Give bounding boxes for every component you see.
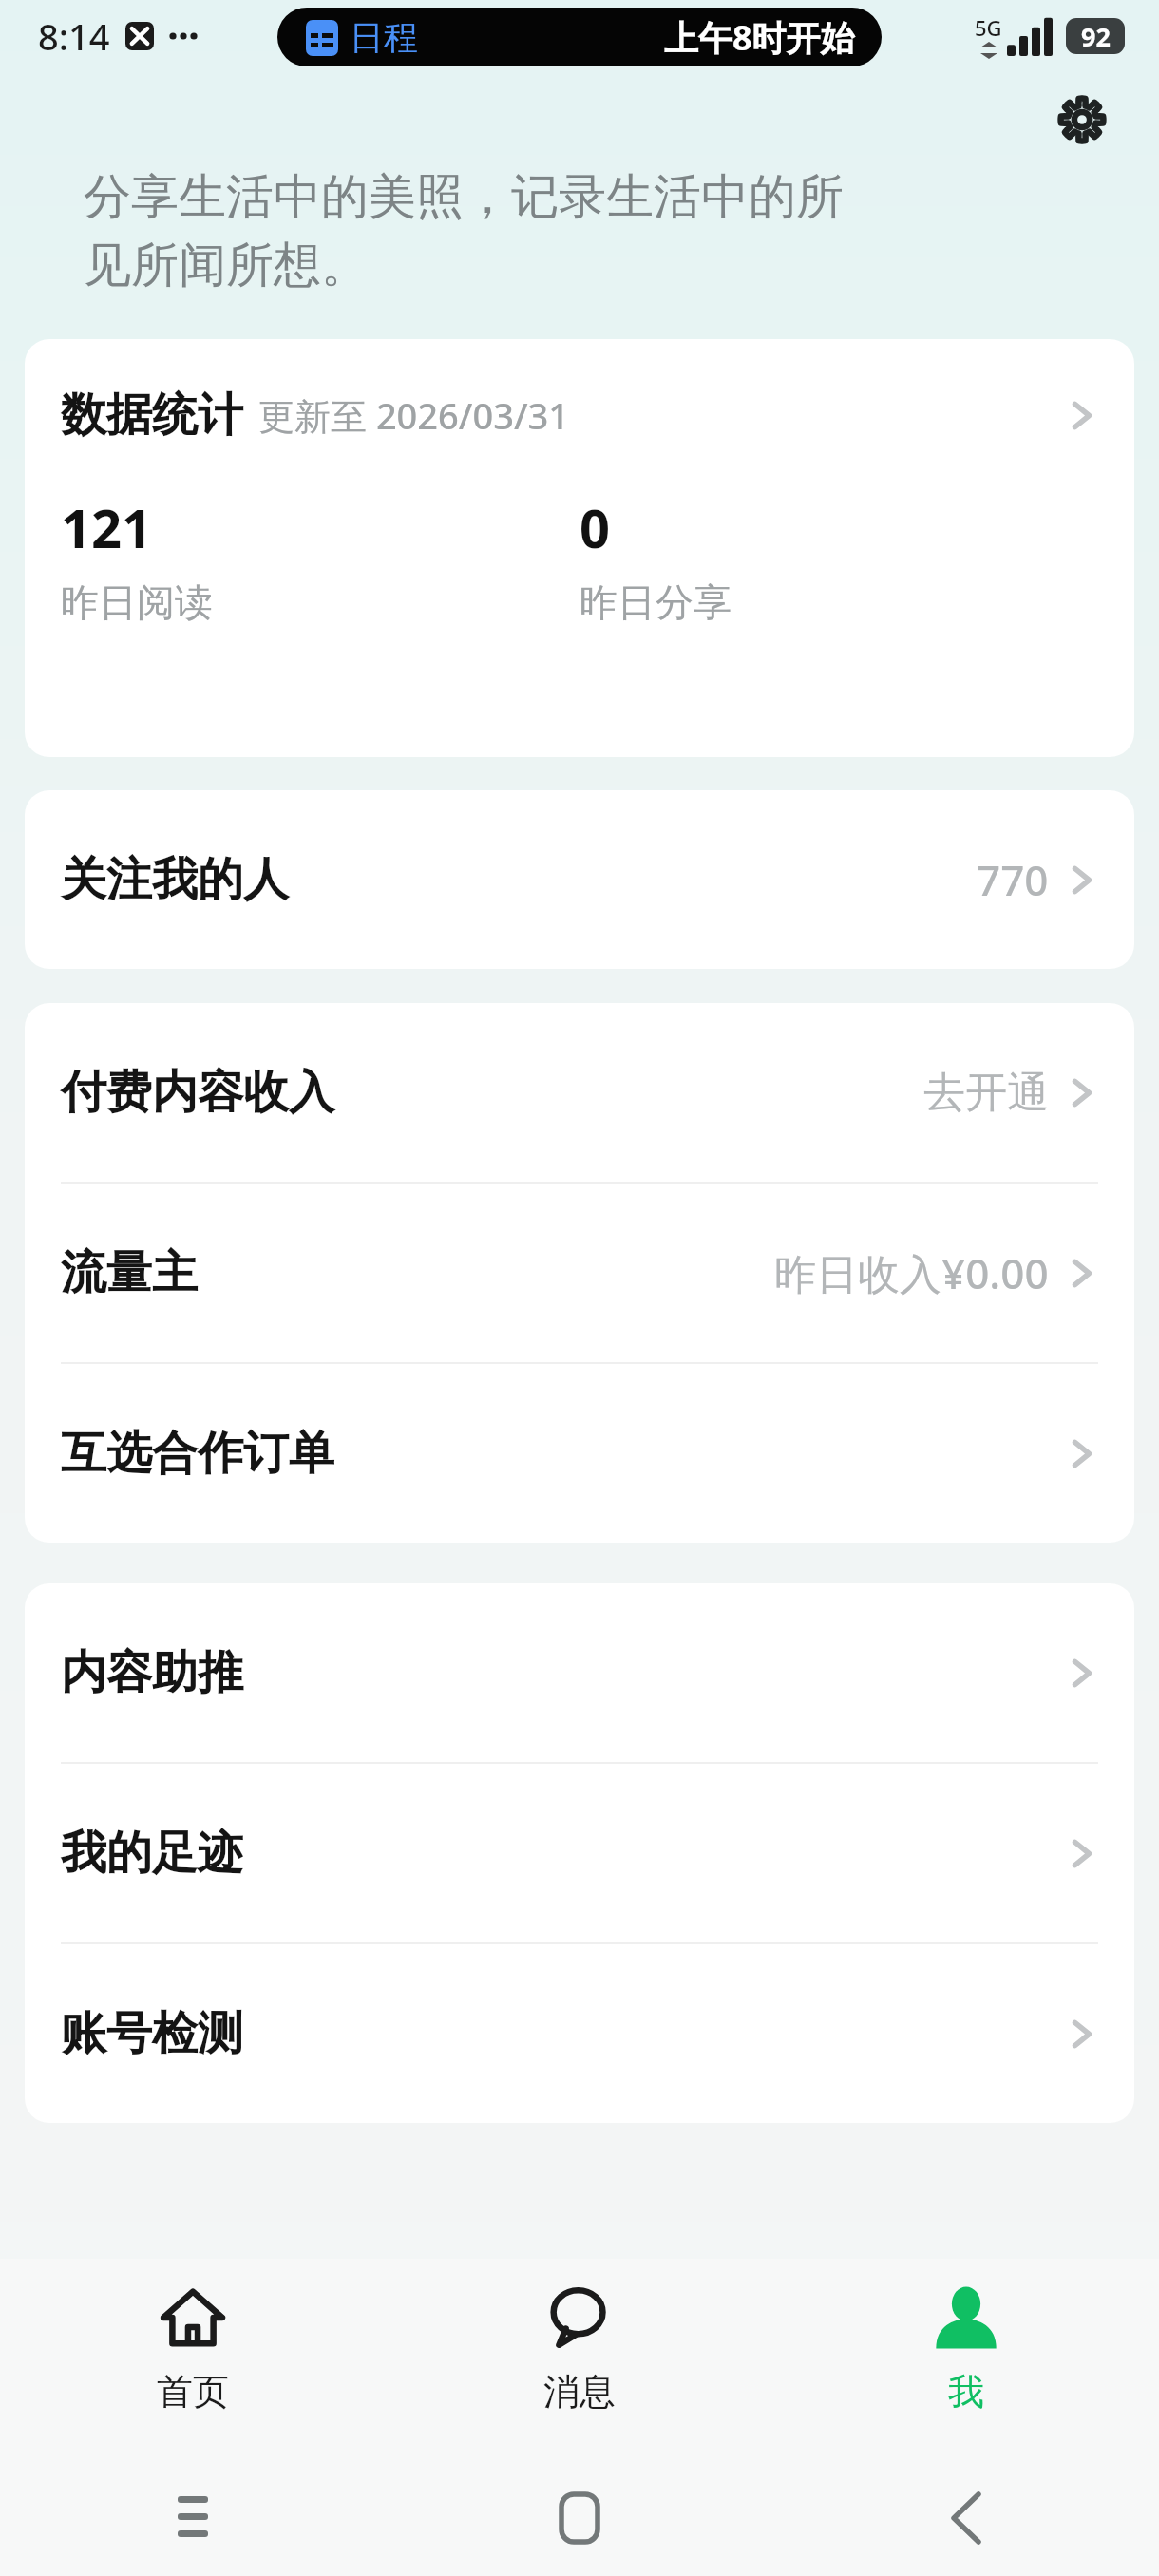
button[interactable]: Settings (1045, 83, 1119, 157)
button[interactable]: 内容助推 (25, 1583, 1134, 1762)
button[interactable]: 关注我的人 (25, 790, 1134, 969)
staticText: 关注我的人 (61, 851, 289, 908)
staticText: 0 (579, 491, 611, 563)
staticText: 昨日收入¥0.00 (774, 1244, 1049, 1301)
staticText: 上午8时开始 (664, 14, 855, 61)
button[interactable]: 121 (61, 491, 579, 626)
staticText: 互选合作订单 (61, 1425, 334, 1482)
button[interactable]: Home (386, 2460, 772, 2576)
button[interactable]: 我 (772, 2259, 1159, 2460)
staticText: 昨日分享 (579, 578, 731, 626)
staticText: 数据统计 (61, 387, 243, 444)
staticText: 5G (975, 13, 1002, 42)
staticText: 分享生活中的美照，记录生活中的所 见所闻所想。 (84, 167, 844, 295)
staticText: 我 (948, 2369, 984, 2415)
staticText: 昨日阅读 (61, 578, 213, 626)
button[interactable]: 数据统计 (25, 339, 1134, 491)
button[interactable]: 消息 (386, 2259, 772, 2460)
button[interactable]: 首页 (0, 2259, 386, 2460)
staticText: 流量主 (61, 1244, 198, 1301)
button[interactable]: 日程 (277, 8, 882, 66)
button[interactable]: 0 (579, 491, 1098, 626)
staticText: 更新至 2026/03/31 (258, 390, 570, 440)
staticText: 消息 (543, 2369, 616, 2415)
staticText: 去开通 (923, 1067, 1049, 1119)
staticText: 首页 (157, 2369, 229, 2415)
button[interactable]: 付费内容收入 (25, 1003, 1134, 1182)
staticText: 日程 (350, 16, 418, 59)
staticText: 770 (977, 851, 1049, 908)
staticText: 内容助推 (61, 1644, 243, 1701)
button[interactable]: Back (772, 2460, 1159, 2576)
staticText: 121 (61, 491, 153, 563)
staticText: 8:14 (38, 11, 110, 61)
staticText: 92 (1081, 19, 1111, 54)
staticText: 账号检测 (61, 2005, 243, 2062)
button[interactable]: 互选合作订单 (25, 1364, 1134, 1543)
button[interactable]: Recents (0, 2460, 386, 2576)
staticText: 我的足迹 (61, 1825, 243, 1882)
button[interactable]: 流量主 (25, 1184, 1134, 1362)
button[interactable]: 我的足迹 (25, 1764, 1134, 1942)
staticText: 付费内容收入 (61, 1064, 334, 1121)
button[interactable]: 账号检测 (25, 1944, 1134, 2123)
